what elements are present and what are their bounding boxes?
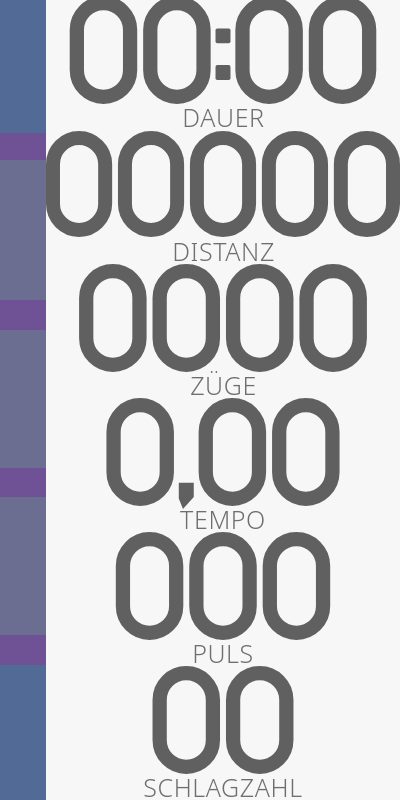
staticText: SCHLAGZAHL: [143, 770, 303, 800]
button[interactable]: TEMPO: [46, 402, 400, 536]
button[interactable]: SCHLAGZAHL: [46, 670, 400, 800]
staticText: PULS: [192, 636, 254, 670]
button[interactable]: ZÜGE: [46, 268, 400, 402]
button[interactable]: DAUER: [46, 0, 400, 134]
staticText: DISTANZ: [172, 234, 275, 268]
button[interactable]: Workout intensity zones: [0, 0, 46, 800]
button[interactable]: DISTANZ: [46, 134, 400, 268]
staticText: DAUER: [182, 100, 265, 134]
staticText: ZÜGE: [190, 368, 257, 402]
button[interactable]: PULS: [46, 536, 400, 670]
staticText: TEMPO: [180, 502, 266, 536]
